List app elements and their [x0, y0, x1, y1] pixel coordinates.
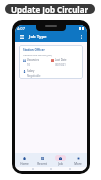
button[interactable]: Station Officer: [19, 45, 83, 79]
button[interactable]: Job: [51, 153, 69, 167]
button[interactable]: Open navigation menu: [18, 33, 25, 40]
staticText: Recent: [37, 162, 47, 166]
staticText: Home: [20, 162, 29, 166]
button[interactable]: More options: [78, 34, 84, 40]
staticText: More: [74, 162, 82, 166]
staticText: Last Date: [55, 58, 67, 62]
staticText: National Fire Service (Job): [23, 53, 52, 56]
staticText: Vacancies: [27, 58, 39, 62]
staticText: Job Type: [29, 34, 47, 40]
staticText: Negotiable: [27, 74, 41, 78]
button[interactable]: More: [69, 153, 87, 167]
staticText: 4:07: [17, 26, 25, 31]
staticText: Station Officer: [23, 48, 45, 52]
staticText: Job: [58, 162, 63, 166]
staticText: 10: [27, 63, 30, 67]
staticText: 30/10/21: [55, 63, 66, 67]
button[interactable]: Recent: [33, 153, 51, 167]
button[interactable]: Home: [15, 153, 33, 167]
staticText: Update Job Circular: [11, 4, 89, 14]
staticText: Salary: [27, 69, 35, 73]
